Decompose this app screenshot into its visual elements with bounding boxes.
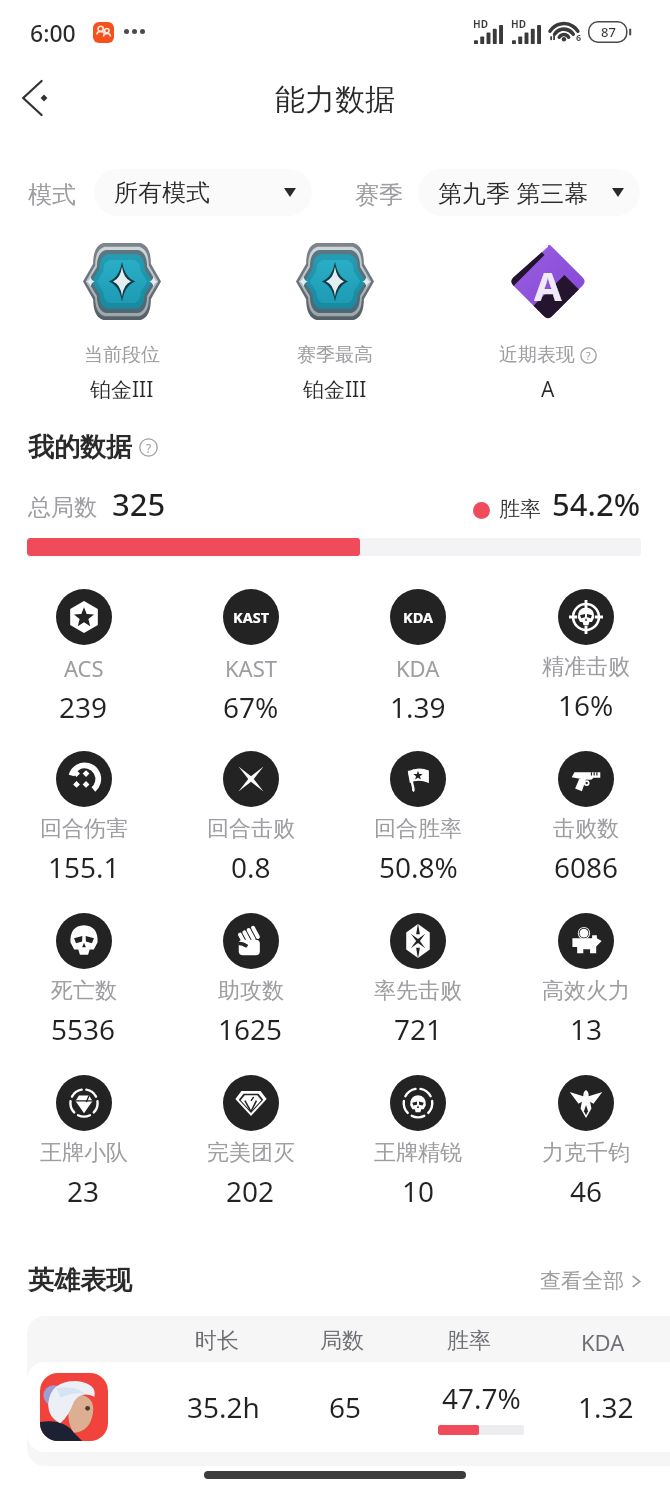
staticText: 模式 — [28, 180, 76, 210]
staticText: 202 — [226, 1172, 275, 1210]
staticText: 死亡数 — [51, 977, 117, 1005]
staticText: 5536 — [51, 1010, 116, 1048]
staticText: 67% — [223, 688, 279, 726]
staticText: 第九季 第三幕 — [438, 176, 589, 209]
button[interactable]: 王牌精锐 — [334, 1075, 502, 1210]
staticText: 胜率 — [447, 1327, 491, 1355]
staticText: 率先击败 — [374, 977, 462, 1005]
button[interactable]: 回合击败 — [167, 751, 334, 886]
button[interactable]: KAST — [167, 589, 334, 726]
staticText: 65 — [329, 1388, 362, 1426]
button[interactable]: 高效火力 — [502, 913, 670, 1048]
button[interactable]: 回合胜率 — [334, 751, 502, 886]
staticText: 查看全部 — [540, 1268, 624, 1294]
staticText: ? — [586, 349, 591, 363]
staticText: 1.32 — [578, 1388, 634, 1426]
staticText: 铂金III — [303, 375, 367, 404]
staticText: 35.2h — [187, 1388, 260, 1426]
staticText: 13 — [570, 1010, 603, 1048]
button[interactable]: 所有模式 — [94, 169, 312, 216]
staticText: 击败数 — [553, 815, 619, 843]
staticText: KAST — [225, 653, 277, 683]
button[interactable]: KDA — [334, 589, 502, 726]
staticText: 能力数据 — [275, 81, 395, 119]
staticText: 我的数据 — [28, 431, 132, 464]
staticText: KAST — [233, 607, 270, 627]
staticText: 铂金III — [90, 375, 154, 404]
staticText: 力克千钧 — [542, 1139, 630, 1167]
button[interactable]: 当前段位 — [32, 243, 212, 404]
staticText: 325 — [112, 483, 166, 525]
staticText: 50.8% — [379, 848, 458, 886]
staticText: 1625 — [218, 1010, 283, 1048]
staticText: 完美团灭 — [207, 1139, 295, 1167]
button[interactable]: 击败数 — [502, 751, 670, 886]
staticText: ACS — [64, 653, 104, 683]
staticText: 155.1 — [48, 848, 120, 886]
button[interactable]: ACS — [0, 589, 167, 726]
staticText: 10 — [402, 1172, 435, 1210]
staticText: 47.7% — [442, 1379, 521, 1417]
staticText: HD — [473, 17, 488, 31]
staticText: 局数 — [320, 1327, 364, 1355]
button[interactable]: 查看全部 — [540, 1268, 644, 1294]
staticText: 赛季 — [355, 180, 403, 210]
staticText: 王牌精锐 — [374, 1139, 462, 1167]
staticText: 回合击败 — [207, 815, 295, 843]
button[interactable]: 赛季最高 — [245, 243, 425, 404]
staticText: 精准击败 — [542, 653, 630, 681]
staticText: 16% — [558, 686, 614, 724]
button[interactable]: 完美团灭 — [167, 1075, 334, 1210]
staticText: 时长 — [195, 1327, 239, 1355]
button[interactable]: 王牌小队 — [0, 1075, 167, 1210]
button[interactable]: 回合伤害 — [0, 751, 167, 886]
staticText: 54.2% — [552, 483, 641, 525]
staticText: 46 — [570, 1172, 603, 1210]
staticText: 英雄表现 — [28, 1264, 132, 1297]
staticText: A — [534, 258, 562, 312]
staticText: 赛季最高 — [297, 343, 373, 367]
button[interactable]: 助攻数 — [167, 913, 334, 1048]
staticText: KDA — [581, 1327, 625, 1357]
staticText: 23 — [67, 1172, 100, 1210]
button[interactable]: Back — [8, 66, 72, 130]
staticText: 胜率 — [499, 496, 541, 522]
staticText: 6086 — [554, 848, 619, 886]
staticText: 6:00 — [30, 17, 76, 48]
staticText: 总局数 — [28, 493, 97, 522]
staticText: 高效火力 — [542, 977, 630, 1005]
staticText: 0.8 — [231, 848, 271, 886]
staticText: KDA — [403, 607, 433, 627]
staticText: 6 — [576, 31, 582, 43]
staticText: 721 — [394, 1010, 443, 1048]
staticText: 王牌小队 — [40, 1139, 128, 1167]
button[interactable]: A — [458, 243, 638, 404]
staticText: 当前段位 — [84, 343, 160, 367]
staticText: 回合胜率 — [374, 815, 462, 843]
button[interactable] — [27, 1362, 670, 1452]
staticText: 近期表现 — [499, 343, 575, 367]
staticText: A — [541, 375, 555, 404]
button[interactable]: 第九季 第三幕 — [418, 169, 640, 216]
staticText: 239 — [59, 688, 108, 726]
staticText: HD — [511, 17, 526, 31]
button[interactable]: 死亡数 — [0, 913, 167, 1048]
staticText: 所有模式 — [114, 178, 210, 208]
button[interactable]: 精准击败 — [502, 589, 670, 724]
staticText: KDA — [396, 653, 440, 683]
staticText: 87 — [601, 23, 616, 41]
staticText: ? — [146, 440, 152, 456]
staticText: 1.39 — [390, 688, 446, 726]
staticText: 回合伤害 — [40, 815, 128, 843]
staticText: 助攻数 — [218, 977, 284, 1005]
button[interactable]: 率先击败 — [334, 913, 502, 1048]
button[interactable]: 力克千钧 — [502, 1075, 670, 1210]
